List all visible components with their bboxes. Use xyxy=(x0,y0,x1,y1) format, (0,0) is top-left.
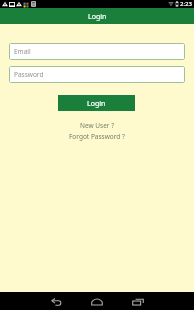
button[interactable]: Password xyxy=(9,66,185,83)
staticText: 2:23 xyxy=(180,0,192,8)
button[interactable]: Forgot Password ? xyxy=(65,131,129,142)
staticText: Login xyxy=(87,99,106,109)
button[interactable]: New User ? xyxy=(76,120,119,131)
button[interactable]: Recents xyxy=(118,292,158,310)
staticText: Forgot Password ? xyxy=(69,132,125,141)
staticText: Login xyxy=(88,12,107,22)
staticText: New User ? xyxy=(80,121,115,130)
button[interactable]: Back xyxy=(36,292,76,310)
button[interactable]: Email xyxy=(9,43,185,60)
button[interactable]: Login xyxy=(58,95,135,111)
button[interactable]: Home xyxy=(77,292,117,310)
staticText: Email xyxy=(14,47,31,56)
staticText: Password xyxy=(14,70,44,79)
